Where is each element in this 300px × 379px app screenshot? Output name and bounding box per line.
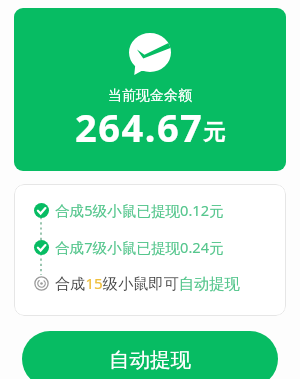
button[interactable]: 合成5级小鼠已提现0.12元 <box>14 198 286 222</box>
staticText: 自动提现 <box>109 347 191 373</box>
button[interactable]: 自动提现 <box>22 331 278 379</box>
staticText: 合成7级小鼠已提现0.24元 <box>55 237 224 257</box>
staticText: 当前现金余额 <box>108 87 192 105</box>
button[interactable]: 合成7级小鼠已提现0.24元 <box>14 235 286 259</box>
button[interactable]: 合成15级小鼠即可自动提现 <box>14 271 286 295</box>
staticText: 合成5级小鼠已提现0.12元 <box>55 200 224 220</box>
button[interactable]: WeChat Pay <box>14 8 286 171</box>
other: WeChat Pay <box>129 33 171 75</box>
staticText: 264.67元 <box>75 101 226 153</box>
staticText: 合成15级小鼠即可自动提现 <box>55 273 240 294</box>
